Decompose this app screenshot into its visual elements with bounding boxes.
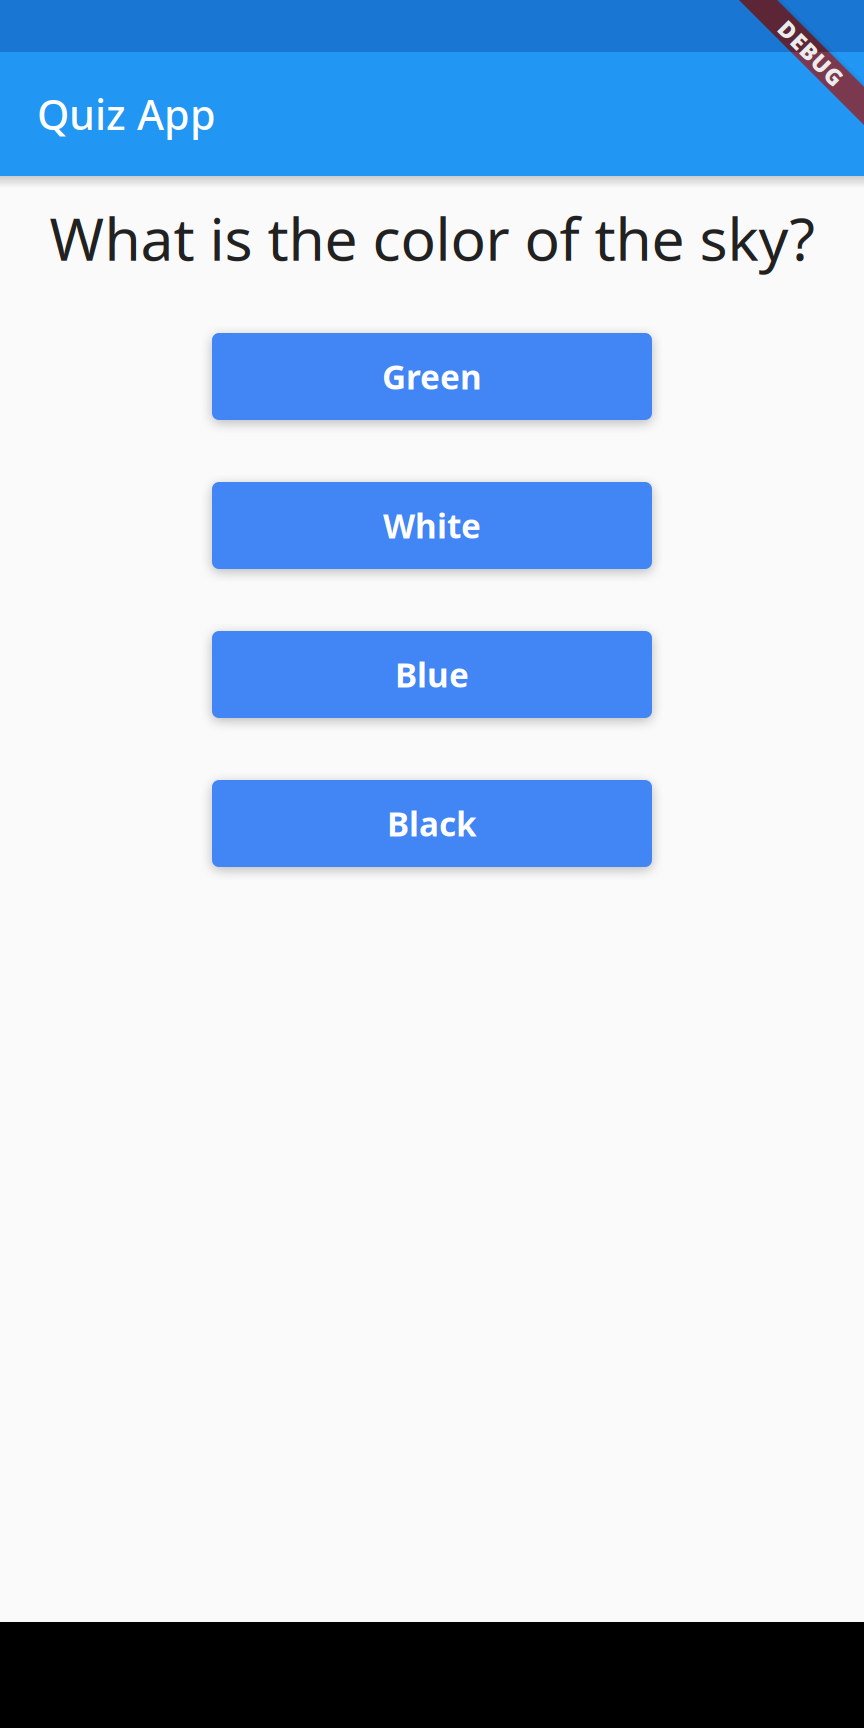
button[interactable]: Black [212, 780, 652, 867]
button[interactable]: Blue [212, 631, 652, 718]
staticText: DEBUG [770, 38, 852, 68]
staticText: What is the color of the sky? [49, 199, 814, 277]
staticText: Black [387, 801, 477, 846]
staticText: Green [382, 354, 482, 399]
staticText: Quiz App [37, 87, 216, 141]
staticText: DEBUG [770, 38, 852, 68]
staticText: Blue [395, 652, 469, 697]
button[interactable]: White [212, 482, 652, 569]
staticText: White [383, 503, 481, 548]
button[interactable]: Green [212, 333, 652, 420]
